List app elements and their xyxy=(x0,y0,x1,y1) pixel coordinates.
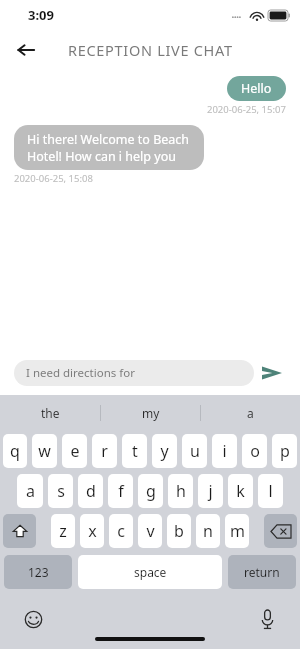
button[interactable]: n xyxy=(196,514,220,548)
button[interactable]: Backspace xyxy=(264,514,297,548)
button[interactable]: x xyxy=(80,514,104,548)
staticText: x xyxy=(88,520,97,542)
button[interactable]: p xyxy=(272,434,297,468)
button[interactable]: h xyxy=(168,474,193,508)
button[interactable]: z xyxy=(51,514,75,548)
staticText: h xyxy=(176,480,186,502)
button[interactable]: k xyxy=(228,474,253,508)
button[interactable]: o xyxy=(242,434,267,468)
button[interactable]: d xyxy=(78,474,103,508)
staticText: Hi there! Welcome to Beach Hotel! How ca… xyxy=(27,131,191,164)
staticText: RECEPTION LIVE CHAT xyxy=(68,40,233,60)
button[interactable]: v xyxy=(138,514,162,548)
button[interactable]: Dictation xyxy=(252,604,282,634)
button[interactable]: t xyxy=(122,434,147,468)
staticText: d xyxy=(86,480,96,502)
staticText: p xyxy=(280,440,290,462)
staticText: j xyxy=(208,480,213,502)
button[interactable]: the xyxy=(0,395,100,430)
staticText: Hello xyxy=(241,80,272,97)
staticText: g xyxy=(146,480,156,502)
staticText: l xyxy=(268,480,273,502)
button[interactable]: b xyxy=(167,514,191,548)
staticText: return xyxy=(244,564,280,580)
button[interactable]: return xyxy=(228,555,296,589)
button[interactable]: w xyxy=(32,434,57,468)
staticText: b xyxy=(174,520,184,542)
staticText: n xyxy=(203,520,213,542)
button[interactable]: r xyxy=(92,434,117,468)
staticText: c xyxy=(117,520,125,542)
button[interactable]: j xyxy=(198,474,223,508)
staticText: e xyxy=(70,440,80,462)
button[interactable]: Hello xyxy=(227,76,286,101)
staticText: space xyxy=(134,564,167,580)
button[interactable]: Send xyxy=(254,355,290,391)
button[interactable]: Back xyxy=(8,32,44,68)
button[interactable]: e xyxy=(62,434,87,468)
staticText: v xyxy=(146,520,155,542)
button[interactable]: u xyxy=(182,434,207,468)
button[interactable]: g xyxy=(138,474,163,508)
button[interactable]: Shift xyxy=(3,514,36,548)
staticText: my xyxy=(142,405,160,421)
button[interactable]: my xyxy=(101,395,200,430)
button[interactable]: q xyxy=(3,434,27,468)
button[interactable]: i xyxy=(212,434,237,468)
button[interactable]: l xyxy=(258,474,283,508)
button[interactable]: f xyxy=(108,474,133,508)
staticText: i xyxy=(222,440,227,462)
staticText: f xyxy=(118,480,124,502)
button[interactable]: s xyxy=(48,474,73,508)
staticText: r xyxy=(101,440,108,462)
button[interactable]: Emoji xyxy=(18,604,48,634)
staticText: q xyxy=(10,440,20,462)
staticText: 2020-06-25, 15:08 xyxy=(14,172,93,185)
staticText: o xyxy=(250,440,260,462)
staticText: a xyxy=(247,405,254,421)
staticText: I need directions for xyxy=(26,365,135,381)
button[interactable]: m xyxy=(225,514,249,548)
button[interactable]: I need directions for xyxy=(14,360,254,386)
staticText: 123 xyxy=(28,564,49,580)
staticText: t xyxy=(132,440,138,462)
staticText: 3:09 xyxy=(28,6,54,24)
staticText: s xyxy=(57,480,65,502)
button[interactable]: a xyxy=(201,395,300,430)
staticText: z xyxy=(59,520,67,542)
button[interactable]: a xyxy=(17,474,43,508)
staticText: 2020-06-25, 15:07 xyxy=(207,103,286,116)
staticText: k xyxy=(236,480,245,502)
staticText: w xyxy=(38,440,51,462)
staticText: the xyxy=(41,405,60,421)
button[interactable]: 123 xyxy=(4,555,72,589)
button[interactable]: space xyxy=(78,555,222,589)
staticText: y xyxy=(160,440,169,462)
staticText: a xyxy=(26,480,35,502)
button[interactable]: y xyxy=(152,434,177,468)
staticText: m xyxy=(230,520,245,542)
button[interactable]: c xyxy=(109,514,133,548)
staticText: u xyxy=(190,440,200,462)
button[interactable]: Hi there! Welcome to Beach Hotel! How ca… xyxy=(14,125,204,170)
